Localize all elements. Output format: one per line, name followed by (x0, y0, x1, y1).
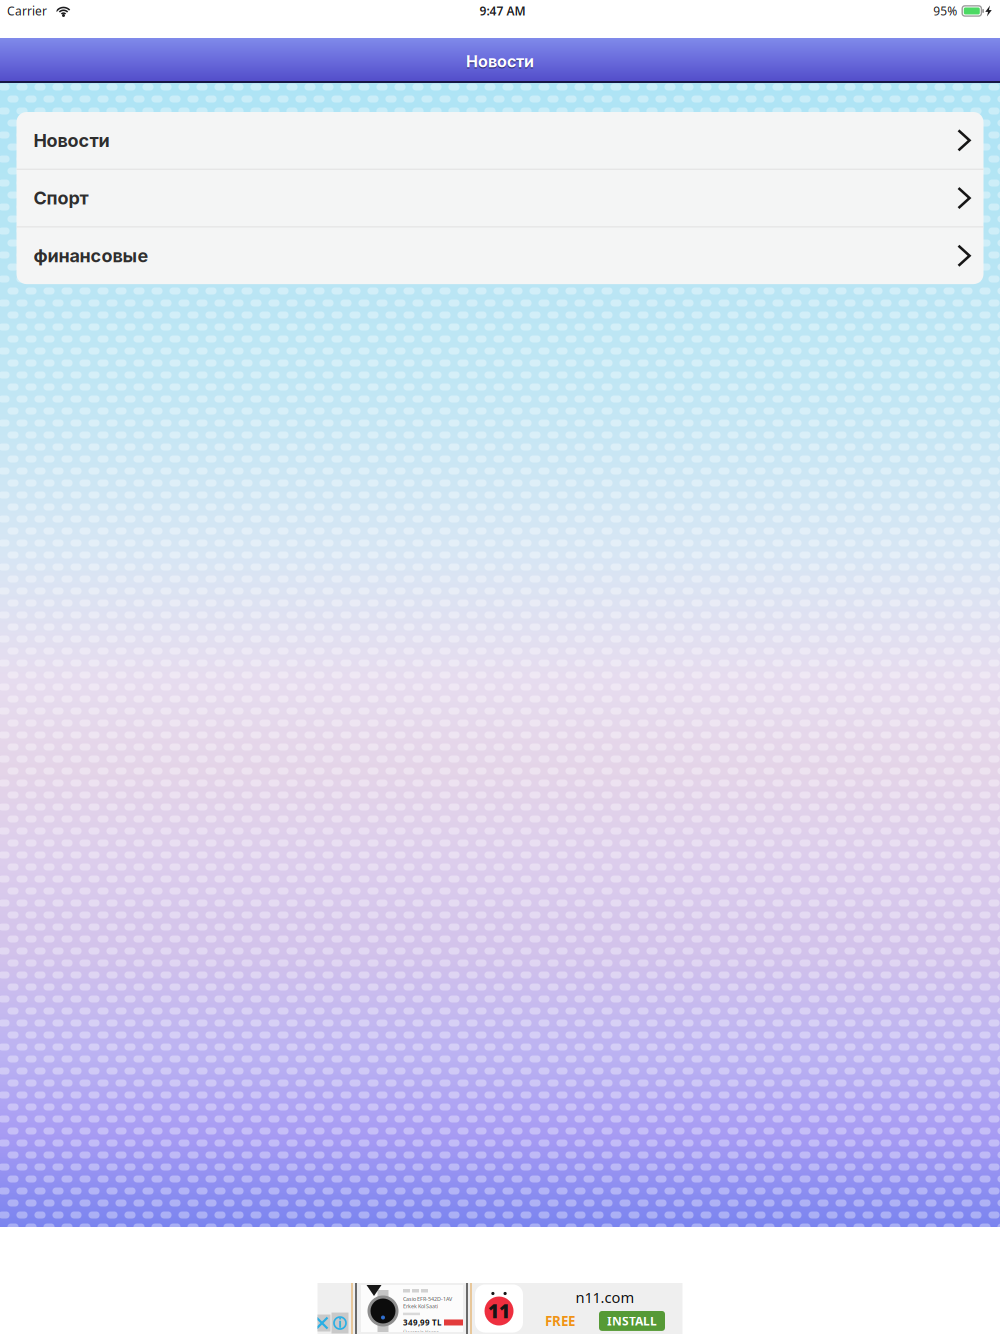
staticText: n11.com (575, 1287, 634, 1307)
staticText: Casio EFR-542D-1AV (403, 1295, 452, 1303)
staticText: Новости (466, 52, 534, 71)
staticText: Новости (33, 129, 109, 151)
staticText: 95% (933, 3, 957, 19)
staticText: 9:47 AM (480, 3, 526, 19)
staticText: Ücretsiz Kargo (403, 1329, 439, 1334)
staticText: финансовые (33, 245, 148, 267)
staticText: 349,99 TL (403, 1317, 441, 1328)
button[interactable]: INSTALL (599, 1311, 665, 1331)
button[interactable]: Новости (16, 112, 983, 169)
button[interactable]: Close ad (313, 1314, 330, 1331)
staticText: FREE (545, 1312, 575, 1330)
button[interactable]: финансовые (16, 227, 983, 284)
staticText: Carrier (7, 3, 47, 19)
staticText: Спорт (33, 187, 88, 209)
staticText: 11 (488, 1299, 510, 1323)
staticText: Erkek Kol Saati (403, 1303, 438, 1310)
button[interactable]: Ad information (331, 1313, 348, 1333)
staticText: i (338, 1315, 342, 1331)
staticText: INSTALL (607, 1313, 657, 1329)
staticText: Новости (466, 53, 534, 72)
button[interactable]: Спорт (16, 170, 983, 226)
